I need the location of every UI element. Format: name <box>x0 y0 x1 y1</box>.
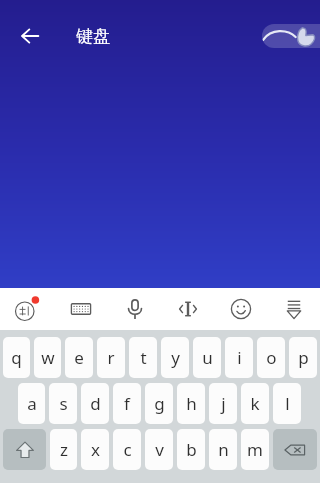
button[interactable]: Gesture typing hint <box>262 24 320 48</box>
button[interactable]: e <box>65 337 93 378</box>
button[interactable]: Emoji <box>214 288 267 330</box>
button[interactable]: Hide keyboard <box>267 288 320 330</box>
staticText: v <box>155 438 164 461</box>
button[interactable]: c <box>113 429 141 470</box>
staticText: z <box>60 438 68 461</box>
staticText: 键盘 <box>76 26 110 47</box>
button[interactable]: d <box>81 383 109 424</box>
button[interactable]: h <box>177 383 205 424</box>
staticText: n <box>218 438 229 461</box>
staticText: a <box>27 392 37 415</box>
staticText: g <box>154 392 165 415</box>
button[interactable]: i <box>225 337 253 378</box>
button[interactable]: v <box>145 429 173 470</box>
staticText: l <box>285 392 290 415</box>
staticText: p <box>298 346 309 369</box>
staticText: s <box>59 392 68 415</box>
button[interactable]: o <box>257 337 285 378</box>
staticText: m <box>247 438 263 461</box>
button[interactable]: m <box>241 429 269 470</box>
button[interactable]: t <box>129 337 157 378</box>
button[interactable]: Delete <box>273 429 317 470</box>
staticText: e <box>74 346 84 369</box>
staticText: w <box>41 346 55 369</box>
button[interactable]: x <box>81 429 109 470</box>
button[interactable]: r <box>97 337 125 378</box>
button[interactable]: Move cursor <box>161 288 214 330</box>
button[interactable]: y <box>161 337 189 378</box>
button[interactable]: q <box>3 337 30 378</box>
staticText: u <box>202 346 213 369</box>
button[interactable]: Input method settings <box>0 288 54 330</box>
button[interactable]: u <box>193 337 221 378</box>
staticText: h <box>186 392 197 415</box>
staticText: f <box>124 392 130 415</box>
staticText: d <box>90 392 101 415</box>
staticText: k <box>250 392 260 415</box>
button[interactable]: g <box>145 383 173 424</box>
button[interactable]: a <box>18 383 45 424</box>
button[interactable]: Shift <box>3 429 46 470</box>
staticText: x <box>91 438 100 461</box>
button[interactable]: p <box>289 337 317 378</box>
button[interactable]: j <box>209 383 237 424</box>
button[interactable]: l <box>273 383 301 424</box>
staticText: c <box>123 438 132 461</box>
button[interactable]: z <box>50 429 77 470</box>
button[interactable]: s <box>49 383 77 424</box>
staticText: b <box>186 438 197 461</box>
button[interactable]: b <box>177 429 205 470</box>
staticText: o <box>266 346 277 369</box>
staticText: q <box>11 346 22 369</box>
button[interactable]: f <box>113 383 141 424</box>
staticText: r <box>107 346 115 369</box>
button[interactable]: n <box>209 429 237 470</box>
staticText: t <box>140 346 147 369</box>
button[interactable]: Switch keyboard layout <box>54 288 108 330</box>
button[interactable]: k <box>241 383 269 424</box>
staticText: j <box>221 392 226 415</box>
button[interactable]: Voice input <box>108 288 161 330</box>
staticText: y <box>171 346 180 369</box>
button[interactable]: Back <box>8 14 52 58</box>
staticText: i <box>237 346 242 369</box>
button[interactable]: w <box>34 337 61 378</box>
